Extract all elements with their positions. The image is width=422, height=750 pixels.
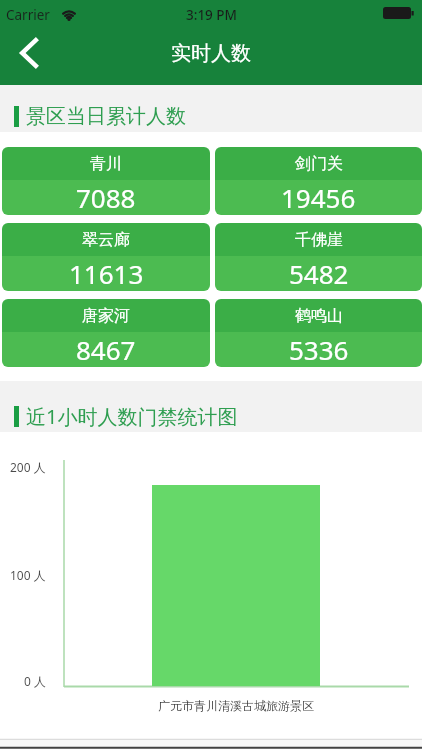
staticText: 5336 — [289, 332, 349, 367]
staticText: 唐家河 — [82, 306, 130, 326]
button[interactable] — [10, 34, 48, 72]
staticText: 8467 — [76, 332, 136, 367]
button[interactable]: 千佛崖 — [215, 223, 422, 291]
button[interactable]: 青川 — [2, 147, 210, 215]
staticText: 200 人 — [10, 459, 46, 475]
staticText: 100 人 — [10, 567, 46, 583]
button[interactable]: 鹤鸣山 — [215, 299, 422, 367]
staticText: 11613 — [69, 256, 144, 291]
staticText: 5482 — [289, 256, 349, 291]
staticText: 翠云廊 — [82, 230, 130, 250]
staticText: 3:19 PM — [186, 6, 237, 24]
staticText: 0 人 — [24, 673, 46, 689]
staticText: 广元市青川清溪古城旅游景区 — [158, 698, 314, 713]
staticText: 千佛崖 — [295, 230, 343, 250]
staticText: 实时人数 — [171, 41, 251, 66]
staticText: 19456 — [281, 180, 356, 215]
staticText: 青川 — [90, 154, 122, 174]
staticText: 近1小时人数门禁统计图 — [26, 403, 238, 430]
staticText: 剑门关 — [295, 154, 343, 174]
staticText: 鹤鸣山 — [295, 306, 343, 326]
staticText: 7088 — [76, 180, 136, 215]
staticText: 景区当日累计人数 — [26, 104, 186, 129]
button[interactable]: 剑门关 — [215, 147, 422, 215]
button[interactable]: 翠云廊 — [2, 223, 210, 291]
staticText: Carrier — [6, 6, 50, 24]
button[interactable]: 唐家河 — [2, 299, 210, 367]
